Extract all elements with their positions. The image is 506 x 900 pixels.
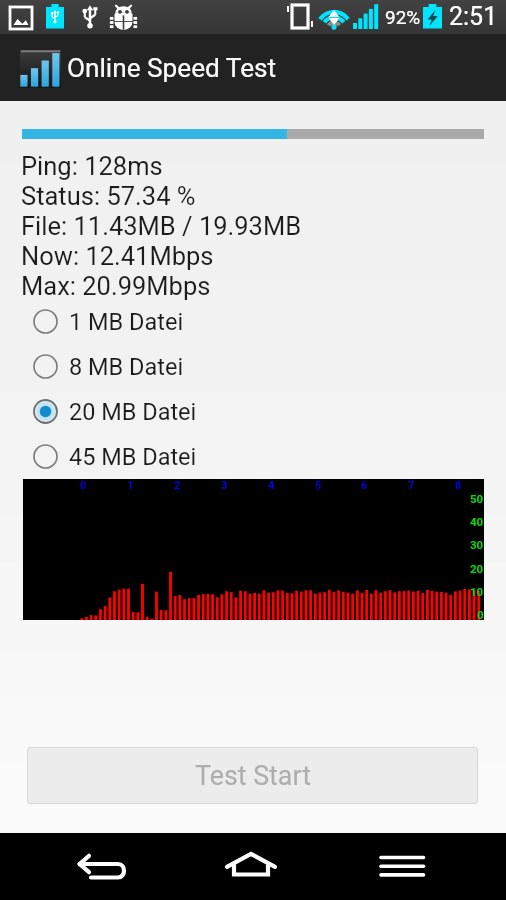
staticText: 4 [268, 479, 275, 492]
button[interactable]: Back [0, 833, 169, 900]
staticText: 45 MB Datei [69, 443, 197, 471]
staticText: 8 [455, 479, 462, 492]
staticText: 6 [361, 479, 368, 492]
staticText: 20 MB Datei [69, 398, 197, 426]
staticText: 1 [127, 479, 134, 492]
staticText: Online Speed Test [67, 53, 277, 84]
staticText: Ping: 128ms [21, 151, 163, 181]
staticText: 10 [470, 585, 484, 598]
staticText: 0 [80, 479, 87, 492]
button[interactable]: Recent apps [337, 833, 506, 900]
staticText: 3 [221, 479, 228, 492]
button[interactable]: 8 MB Datei [0, 344, 506, 389]
staticText: Now: 12.41Mbps [21, 241, 214, 271]
button[interactable]: Test Start [27, 747, 478, 804]
staticText: 0 [477, 608, 484, 621]
staticText: File: 11.43MB / 19.93MB [21, 211, 302, 241]
staticText: 50 [470, 492, 484, 505]
button[interactable]: Home [169, 833, 337, 900]
staticText: 2 [174, 479, 181, 492]
staticText: Test Start [195, 760, 311, 791]
staticText: Status: 57.34 % [21, 181, 196, 211]
staticText: 5 [315, 479, 322, 492]
staticText: 40 [470, 515, 484, 528]
button[interactable]: 1 MB Datei [0, 299, 506, 344]
button[interactable]: 45 MB Datei [0, 434, 506, 479]
staticText: 7 [408, 479, 415, 492]
staticText: Max: 20.99Mbps [21, 271, 211, 301]
staticText: 2:51 [449, 2, 498, 31]
staticText: 1 MB Datei [69, 308, 184, 336]
button[interactable]: 20 MB Datei [0, 389, 506, 434]
staticText: 20 [470, 562, 484, 575]
staticText: 8 MB Datei [69, 353, 184, 381]
staticText: 92% [385, 6, 421, 28]
staticText: 30 [470, 538, 484, 551]
